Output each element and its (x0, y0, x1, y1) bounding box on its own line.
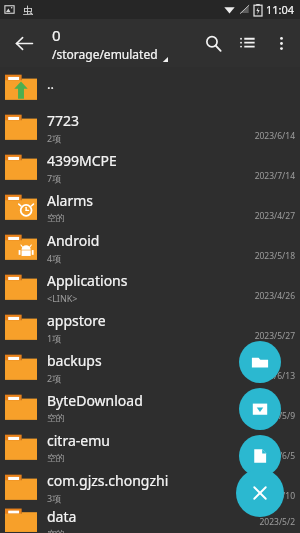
staticText: 2023/6/13 (254, 370, 295, 382)
staticText: .. (47, 75, 54, 93)
button[interactable]: data (0, 507, 300, 533)
staticText: 空的 (47, 528, 65, 533)
staticText: 4399MCPE (47, 151, 117, 170)
staticText: backups (47, 351, 102, 370)
staticText: ByteDownload (47, 391, 143, 410)
staticText: 2023/6/14 (254, 130, 295, 142)
staticText: 虫 (23, 4, 33, 15)
button[interactable]: Close menu (236, 469, 284, 517)
staticText: 2023/5/9 (259, 410, 295, 422)
staticText: 2项 (47, 372, 62, 384)
staticText: 空的 (47, 412, 65, 423)
staticText: Alarms (47, 191, 93, 210)
staticText: 1项 (47, 332, 62, 344)
button[interactable]: 7723 (0, 107, 300, 147)
button[interactable]: Search (196, 26, 230, 60)
staticText: 0 (52, 25, 61, 45)
staticText: /storage/emulated (52, 46, 158, 62)
button[interactable]: New file (239, 435, 281, 477)
button[interactable]: View mode (230, 26, 264, 60)
button[interactable]: New folder (239, 341, 281, 383)
staticText: 空的 (47, 452, 65, 463)
button[interactable]: Alarms (0, 187, 300, 227)
button[interactable]: More options (264, 26, 298, 60)
button[interactable]: Android (0, 227, 300, 267)
staticText: 4项 (47, 252, 62, 264)
button[interactable]: Back (6, 25, 42, 61)
staticText: data (47, 507, 77, 526)
staticText: 2023/7/14 (254, 170, 295, 182)
staticText: 3项 (47, 492, 62, 504)
staticText: Android (47, 231, 100, 250)
staticText: 2项 (47, 132, 62, 144)
button[interactable]: 4399MCPE (0, 147, 300, 187)
staticText: citra-emu (47, 431, 110, 450)
staticText: <LINK> (47, 292, 78, 304)
staticText: 2023/4/27 (254, 210, 295, 222)
button[interactable]: citra-emu (0, 427, 300, 467)
staticText: 7723 (47, 111, 80, 130)
staticText: 11:04 (266, 2, 295, 17)
button[interactable]: ByteDownload (0, 387, 300, 427)
staticText: 2023/4/26 (254, 290, 295, 302)
staticText: 2023/5/27 (254, 330, 295, 342)
button[interactable]: appstore (0, 307, 300, 347)
staticText: 空的 (47, 212, 65, 223)
staticText: 7项 (47, 172, 62, 184)
staticText: 2023/6/5 (259, 450, 295, 462)
button[interactable]: New archive (239, 388, 281, 430)
button[interactable]: Applications (0, 267, 300, 307)
button[interactable]: backups (0, 347, 300, 387)
staticText: 2023/5/2 (259, 516, 295, 528)
staticText: 2023/5/10 (254, 490, 295, 502)
staticText: 2023/5/18 (254, 250, 295, 262)
staticText: com.gjzs.chongzhi (47, 471, 169, 490)
staticText: appstore (47, 311, 106, 330)
button[interactable]: com.gjzs.chongzhi (0, 467, 300, 507)
button[interactable]: .. (0, 67, 300, 107)
staticText: Applications (47, 271, 128, 290)
